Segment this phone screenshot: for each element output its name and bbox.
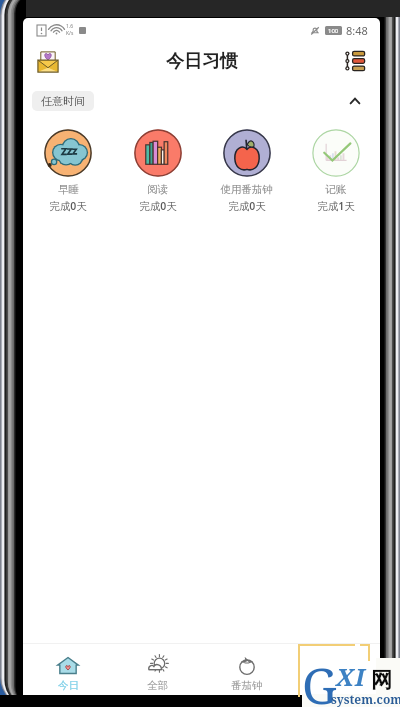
staticText: 全部 — [147, 679, 168, 692]
staticText: 8:48 — [346, 23, 368, 38]
button[interactable]: 使用番茄钟 — [202, 121, 291, 213]
staticText: 今日习惯 — [166, 50, 238, 73]
staticText: 使用番茄钟 — [220, 183, 273, 196]
button[interactable]: Messages — [33, 46, 63, 76]
staticText: K/s — [66, 30, 74, 37]
staticText: 100 — [328, 27, 339, 35]
button[interactable]: 番茄钟 — [202, 644, 291, 695]
button[interactable]: Filter — [340, 46, 370, 76]
staticText: X — [336, 660, 354, 693]
button[interactable]: Collapse — [344, 90, 366, 112]
button[interactable]: 记账 — [291, 121, 380, 213]
button[interactable]: 今日 — [23, 644, 113, 695]
staticText: G — [302, 652, 337, 707]
button[interactable]: 全部 — [113, 644, 202, 695]
staticText: 番茄钟 — [231, 679, 263, 692]
staticText: system.com — [331, 691, 400, 707]
staticText: 1.6 — [66, 23, 74, 30]
button[interactable]: 早睡 — [23, 121, 113, 213]
button[interactable]: 任意时间 — [32, 91, 94, 111]
staticText: I — [355, 660, 365, 693]
staticText: 早睡 — [58, 183, 79, 196]
button[interactable]: 阅读 — [113, 121, 202, 213]
staticText: 完成0天 — [139, 199, 177, 213]
staticText: 今日 — [58, 679, 79, 692]
staticText: 网 — [371, 667, 392, 693]
staticText: 任意时间 — [41, 94, 85, 108]
staticText: 阅读 — [147, 183, 168, 196]
staticText: 完成0天 — [49, 199, 87, 213]
staticText: 完成1天 — [317, 199, 355, 213]
staticText: 完成0天 — [228, 199, 266, 213]
staticText: 记账 — [325, 183, 346, 196]
